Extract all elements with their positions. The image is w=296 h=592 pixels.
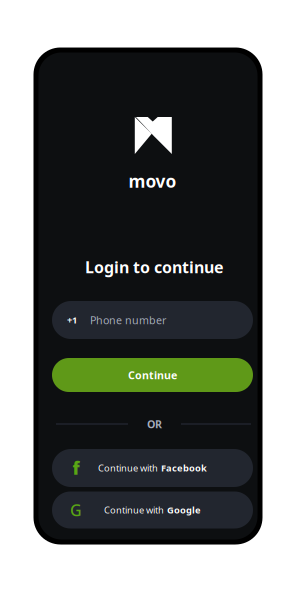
staticText: f [72,456,79,479]
staticText: Facebook [161,462,207,474]
staticText: Continue with [98,462,158,474]
staticText: OR [147,417,162,431]
staticText: Phone number [90,313,166,327]
staticText: movo [128,169,176,192]
button[interactable]: Continue [52,358,253,392]
staticText: Google [167,504,201,516]
staticText: Continue with [104,504,164,516]
staticText: +1 [67,314,77,326]
button[interactable]: G [52,491,253,528]
staticText: Continue [128,368,177,382]
staticText: Login to continue [85,256,224,278]
button[interactable]: f [52,449,253,487]
staticText: G [70,499,82,521]
